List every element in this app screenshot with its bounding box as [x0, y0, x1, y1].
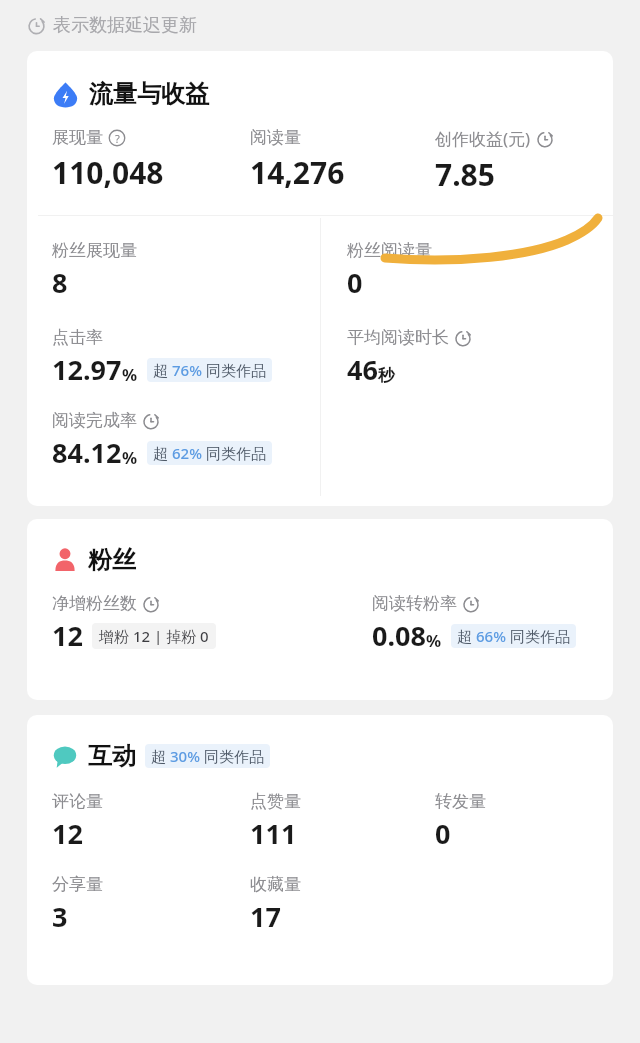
- staticText: 17: [250, 898, 281, 935]
- staticText: 转发量: [435, 791, 486, 812]
- staticText: 阅读量: [250, 127, 301, 148]
- staticText: 30%: [170, 746, 200, 766]
- staticText: 粉丝展现量: [52, 240, 137, 261]
- staticText: 超: [153, 443, 172, 463]
- staticText: 点赞量: [250, 791, 301, 812]
- staticText: 超: [153, 360, 172, 380]
- staticText: 阅读完成率: [52, 410, 137, 431]
- staticText: 84.12: [52, 434, 122, 471]
- staticText: 分享量: [52, 874, 103, 895]
- staticText: 0: [347, 264, 363, 301]
- staticText: 粉丝: [88, 545, 136, 575]
- staticText: 阅读转粉率: [372, 593, 457, 614]
- staticText: %: [122, 363, 138, 386]
- staticText: 秒: [378, 365, 395, 386]
- staticText: 同类作品: [506, 626, 570, 646]
- staticText: 76%: [172, 360, 202, 380]
- staticText: 12: [52, 617, 83, 654]
- staticText: 同类作品: [202, 443, 266, 463]
- staticText: 111: [250, 815, 297, 852]
- staticText: 12.97: [52, 351, 122, 388]
- staticText: 粉丝阅读量: [347, 240, 432, 261]
- other: 粉丝: [52, 547, 78, 573]
- staticText: 点击率: [52, 327, 103, 348]
- staticText: 46: [347, 351, 378, 388]
- staticText: 同类作品: [202, 360, 266, 380]
- staticText: 超: [151, 746, 170, 766]
- staticText: 流量与收益: [89, 79, 209, 109]
- button[interactable]: 互动: [27, 715, 613, 985]
- staticText: %: [122, 446, 138, 469]
- staticText: 同类作品: [200, 746, 264, 766]
- staticText: 净增粉丝数: [52, 593, 137, 614]
- staticText: 3: [52, 898, 68, 935]
- staticText: 创作收益(元): [435, 127, 531, 150]
- staticText: 展现量: [52, 127, 103, 148]
- button[interactable]: 流量: [27, 51, 613, 506]
- staticText: 0: [435, 815, 451, 852]
- other: 互动: [52, 743, 78, 769]
- staticText: ?: [115, 131, 120, 146]
- staticText: 评论量: [52, 791, 103, 812]
- staticText: 超: [457, 626, 476, 646]
- staticText: 收藏量: [250, 874, 301, 895]
- button[interactable]: 粉丝: [27, 519, 613, 700]
- staticText: 互动: [88, 741, 136, 771]
- staticText: 增粉 12 | 掉粉 0: [99, 626, 209, 646]
- staticText: 平均阅读时长: [347, 327, 449, 348]
- staticText: %: [426, 629, 442, 652]
- staticText: 12: [52, 815, 83, 852]
- other: 流量: [52, 81, 79, 108]
- staticText: 表示数据延迟更新: [53, 14, 197, 37]
- staticText: 110,048: [52, 152, 164, 193]
- staticText: 7.85: [435, 154, 495, 195]
- staticText: 8: [52, 264, 68, 301]
- staticText: 0.08: [372, 617, 426, 654]
- staticText: 14,276: [250, 152, 345, 193]
- staticText: 62%: [172, 443, 202, 463]
- staticText: 66%: [476, 626, 506, 646]
